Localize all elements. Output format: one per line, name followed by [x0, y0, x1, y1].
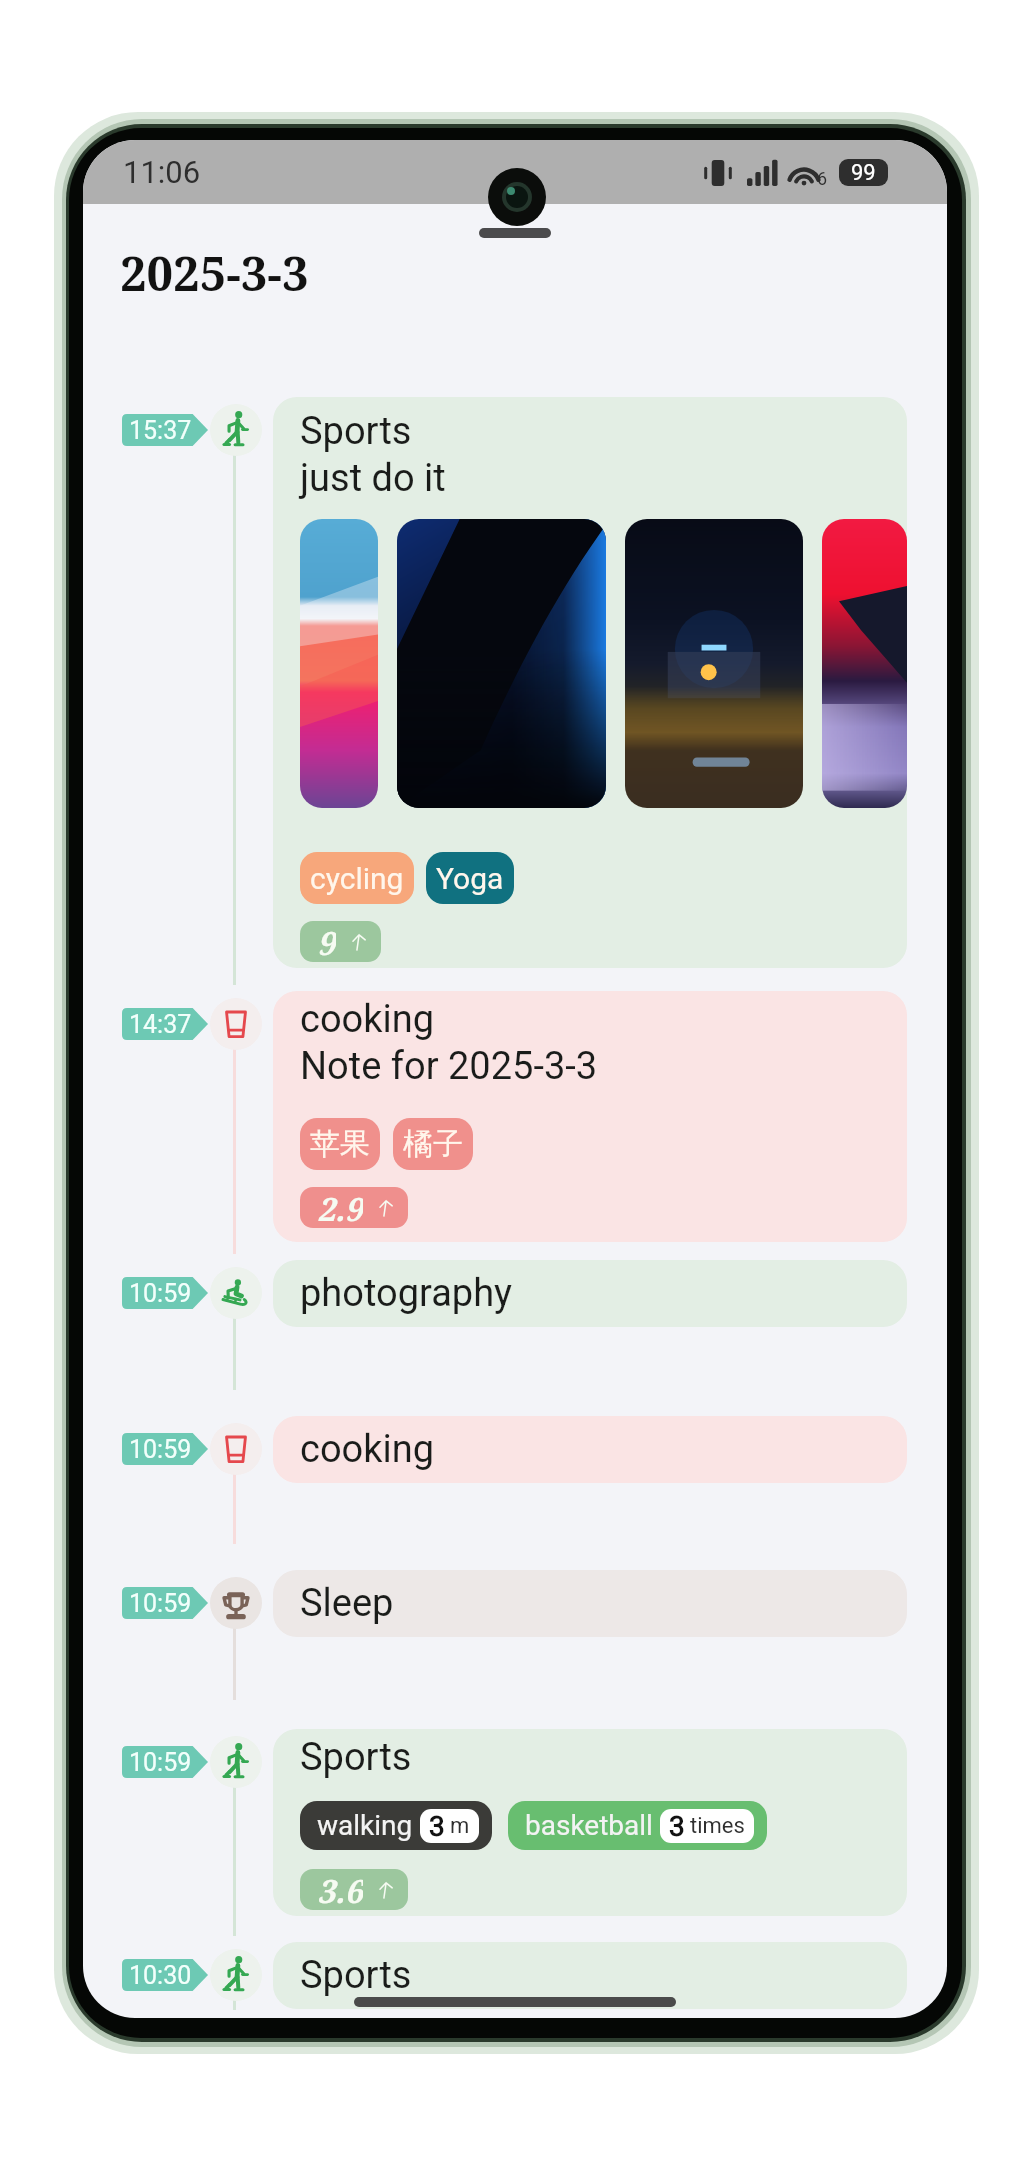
staticText: cycling	[310, 861, 404, 896]
staticText: 99	[851, 160, 876, 186]
button[interactable]: Photo	[625, 519, 803, 808]
staticText: times	[690, 1813, 745, 1839]
staticText: 14:37	[129, 1010, 192, 1039]
button[interactable]: Sports	[273, 397, 907, 968]
button[interactable]: Cooking	[210, 998, 262, 1050]
staticText: 15:37	[129, 416, 192, 445]
staticText: 10:30	[129, 1961, 192, 1990]
staticText: 3	[669, 1810, 685, 1843]
staticText: just do it	[300, 456, 446, 501]
button[interactable]: Sleep	[210, 1577, 262, 1629]
button[interactable]: walking	[300, 1801, 492, 1850]
button[interactable]: 2.9	[300, 1187, 408, 1228]
button[interactable]: Sports	[210, 1736, 262, 1788]
staticText: Sports	[300, 409, 412, 454]
staticText: 10:59	[129, 1279, 192, 1308]
button[interactable]: 10:59	[122, 1746, 208, 1778]
button[interactable]: 9	[300, 921, 381, 962]
button[interactable]: 苹果	[300, 1118, 380, 1170]
staticText: Sleep	[300, 1581, 394, 1626]
staticText: 10:59	[129, 1589, 192, 1618]
button[interactable]: 10:59	[122, 1587, 208, 1619]
staticText: 2.9	[317, 1187, 363, 1228]
button[interactable]: Photo	[822, 519, 907, 808]
button[interactable]: Sports	[210, 404, 262, 456]
staticText: Sports	[300, 1735, 412, 1780]
button[interactable]: 15:37	[122, 414, 208, 446]
button[interactable]: Yoga	[426, 852, 514, 904]
staticText: m	[450, 1813, 470, 1839]
staticText: 2025-3-3	[120, 241, 309, 305]
staticText: Sports	[300, 1953, 412, 1998]
button[interactable]: 橘子	[393, 1118, 473, 1170]
button[interactable]: photography	[273, 1260, 907, 1327]
button[interactable]: Sports	[273, 1942, 907, 2009]
button[interactable]: 10:30	[122, 1959, 208, 1991]
button[interactable]: basketball	[508, 1801, 767, 1850]
button[interactable]: Sports	[210, 1949, 262, 2001]
button[interactable]: Photo	[300, 519, 378, 808]
staticText: photography	[300, 1271, 513, 1316]
staticText: 3	[429, 1810, 445, 1843]
button[interactable]: cooking	[273, 991, 907, 1242]
staticText: 苹果	[310, 1125, 370, 1163]
button[interactable]: cooking	[273, 1416, 907, 1483]
button[interactable]: 3.6	[300, 1869, 408, 1910]
button[interactable]: 14:37	[122, 1008, 208, 1040]
staticText: cooking	[300, 1427, 435, 1472]
staticText: 10:59	[129, 1748, 192, 1777]
staticText: 11:06	[123, 154, 201, 190]
staticText: 橘子	[403, 1125, 463, 1163]
button[interactable]: Cooking	[210, 1423, 262, 1475]
staticText: walking	[317, 1809, 413, 1842]
button[interactable]: cycling	[300, 852, 414, 904]
staticText: Note for 2025-3-3	[300, 1044, 598, 1089]
staticText: 10:59	[129, 1435, 192, 1464]
staticText: basketball	[525, 1809, 653, 1842]
button[interactable]: Sleep	[273, 1570, 907, 1637]
staticText: 6	[817, 168, 828, 189]
button[interactable]: 10:59	[122, 1277, 208, 1309]
button[interactable]: Photography	[210, 1267, 262, 1319]
button[interactable]: 10:59	[122, 1433, 208, 1465]
staticText: cooking	[300, 997, 435, 1042]
button[interactable]: Sports	[273, 1729, 907, 1916]
staticText: Yoga	[436, 861, 504, 896]
button[interactable]: Photo	[397, 519, 606, 808]
staticText: 3.6	[317, 1869, 363, 1910]
staticText: 9	[317, 921, 336, 962]
